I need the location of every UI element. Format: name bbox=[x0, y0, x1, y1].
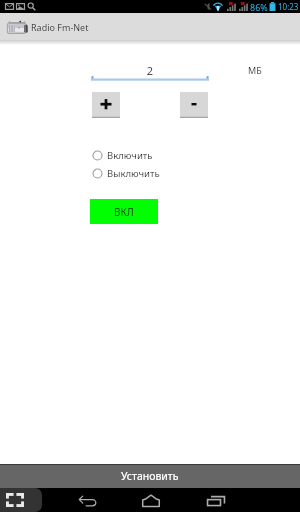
button[interactable]: Screenshot bbox=[0, 488, 42, 512]
button[interactable]: Установить bbox=[0, 465, 300, 488]
button[interactable]: Back bbox=[66, 488, 108, 512]
staticText: Включить bbox=[107, 149, 153, 162]
staticText: Radio Fm-Net bbox=[31, 21, 89, 33]
staticText: Установить bbox=[121, 469, 179, 483]
staticText: 2 bbox=[92, 63, 208, 78]
button[interactable]: Home bbox=[130, 488, 172, 512]
button[interactable]: Выключить bbox=[92, 165, 182, 181]
staticText: Выключить bbox=[107, 167, 160, 180]
button[interactable]: Включить bbox=[92, 147, 182, 163]
button[interactable]: Increase bbox=[92, 92, 120, 118]
button[interactable]: Recent apps bbox=[195, 488, 237, 512]
button[interactable]: Decrease bbox=[180, 92, 208, 118]
button[interactable]: ВКЛ bbox=[90, 199, 158, 224]
staticText: 86% bbox=[250, 1, 268, 13]
staticText: 10:23 bbox=[278, 1, 299, 12]
staticText: ВКЛ bbox=[114, 205, 134, 219]
staticText: МБ bbox=[248, 64, 262, 76]
